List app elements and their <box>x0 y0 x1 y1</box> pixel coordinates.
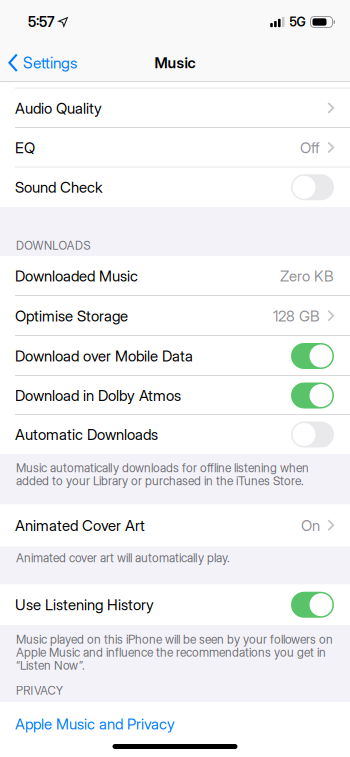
staticText: Zero KB <box>280 267 334 285</box>
staticText: Downloaded Music <box>15 267 138 285</box>
button[interactable]: Download in Dolby Atmos <box>291 382 334 408</box>
staticText: EQ <box>15 139 35 157</box>
staticText: Apple Music and influence the recommenda… <box>16 645 326 660</box>
staticText: DOWNLOADS <box>16 239 90 252</box>
staticText: On <box>301 516 320 534</box>
staticText: Music automatically downloads for offlin… <box>16 461 309 475</box>
staticText: Optimise Storage <box>15 307 128 325</box>
staticText: Automatic Downloads <box>15 425 158 443</box>
staticText: Download in Dolby Atmos <box>15 386 181 404</box>
button[interactable]: Sound Check <box>291 174 334 200</box>
staticText: Download over Mobile Data <box>15 347 193 365</box>
button[interactable]: Audio Quality <box>0 88 350 128</box>
staticText: Audio Quality <box>15 99 102 117</box>
staticText: Music <box>154 54 195 72</box>
staticText: 128 GB <box>273 307 320 325</box>
button[interactable]: Back <box>0 53 77 72</box>
staticText: 5G <box>289 14 305 29</box>
staticText: Music played on this iPhone will be seen… <box>16 632 333 647</box>
button[interactable]: Apple Music and Privacy <box>0 702 350 746</box>
button[interactable]: Optimise Storage <box>0 296 350 336</box>
staticText: added to your Library or purchased in th… <box>16 474 304 488</box>
staticText: “Listen Now”. <box>16 658 85 673</box>
button[interactable]: EQ <box>0 128 350 167</box>
staticText: Animated Cover Art <box>15 516 145 534</box>
staticText: Apple Music and Privacy <box>15 715 175 733</box>
button[interactable]: Automatic Downloads <box>291 421 334 447</box>
staticText: Off <box>300 139 320 157</box>
button[interactable]: Use Listening History <box>291 592 334 618</box>
staticText: Use Listening History <box>15 596 154 614</box>
staticText: Settings <box>23 53 77 72</box>
button[interactable]: Download over Mobile Data <box>291 343 334 369</box>
staticText: Sound Check <box>15 178 103 196</box>
staticText: PRIVACY <box>16 684 63 697</box>
staticText: Animated cover art will automatically pl… <box>16 551 230 565</box>
staticText: 5:57 <box>28 13 55 30</box>
button[interactable]: Animated Cover Art <box>0 504 350 546</box>
